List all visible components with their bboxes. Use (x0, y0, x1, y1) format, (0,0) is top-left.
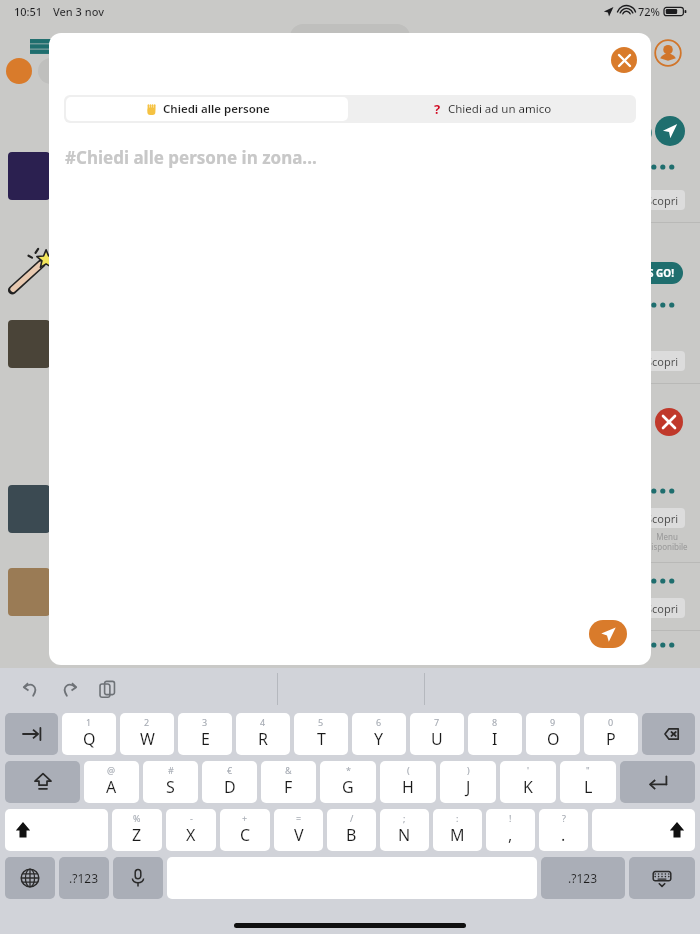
staticText: Scopri (646, 193, 679, 208)
button[interactable]: " (560, 761, 616, 803)
staticText: Z (132, 824, 142, 846)
staticText: * (346, 764, 351, 776)
button[interactable]: = (274, 809, 323, 851)
button[interactable]: ) (440, 761, 496, 803)
staticText: € (227, 764, 233, 776)
button[interactable]: & (261, 761, 316, 803)
staticText: 1 (86, 716, 92, 728)
button[interactable]: 9 (526, 713, 580, 755)
button[interactable]: Maiuscolo (5, 809, 108, 851)
staticText: ? (434, 100, 441, 118)
button[interactable]: Incolla (94, 676, 120, 702)
button[interactable]: Maiuscolo (592, 809, 695, 851)
button[interactable]: 1 (62, 713, 116, 755)
button[interactable]: Chiedi alle persone (66, 97, 348, 121)
staticText: T (317, 728, 326, 750)
button[interactable]: 0 (584, 713, 638, 755)
staticText: 72% (638, 4, 660, 19)
button[interactable]: * (320, 761, 376, 803)
staticText: H (402, 776, 414, 798)
staticText: # (168, 764, 174, 776)
staticText: A (106, 776, 117, 798)
button[interactable]: 5 (294, 713, 348, 755)
staticText: U (431, 728, 443, 750)
button[interactable]: @ (84, 761, 139, 803)
button[interactable]: .?123 (541, 857, 625, 899)
button[interactable]: Lingua (5, 857, 55, 899)
button[interactable]: ? (350, 95, 636, 123)
button[interactable]: # (143, 761, 198, 803)
button[interactable]: 4 (236, 713, 290, 755)
button[interactable]: ? (539, 809, 588, 851)
staticText: : (456, 812, 459, 824)
staticText: E (201, 728, 210, 750)
button[interactable]: 3 (178, 713, 232, 755)
staticText: ? (562, 812, 566, 824)
staticText: V (294, 824, 304, 846)
button[interactable]: Scopri (646, 351, 679, 371)
button[interactable]: - (166, 809, 216, 851)
button[interactable]: Dettatura (113, 857, 163, 899)
staticText: 0 (608, 716, 614, 728)
button[interactable]: Invio (620, 761, 695, 803)
button[interactable]: : (433, 809, 482, 851)
button[interactable]: 8 (468, 713, 522, 755)
other: Menu (28, 34, 54, 60)
button[interactable]: + (220, 809, 270, 851)
button[interactable]: ' (500, 761, 556, 803)
staticText: Q (83, 728, 96, 750)
staticText: 8 (492, 716, 498, 728)
button[interactable]: ; (380, 809, 429, 851)
button[interactable]: % (112, 809, 162, 851)
button[interactable]: Scopri (646, 508, 679, 528)
staticText: R (258, 728, 268, 750)
button[interactable]: Ripeti (56, 676, 82, 702)
button[interactable]: Cancella (642, 713, 695, 755)
staticText: J (466, 776, 471, 798)
staticText: 5 (318, 716, 324, 728)
button[interactable]: Tab (5, 713, 58, 755)
staticText: & (285, 764, 292, 776)
staticText: % (133, 812, 141, 824)
button[interactable]: Invia (589, 620, 627, 648)
staticText: @ (107, 764, 116, 776)
button[interactable]: Scopri (646, 598, 679, 618)
staticText: F (284, 776, 293, 798)
button[interactable]: Annulla (18, 676, 44, 702)
staticText: ( (407, 764, 410, 776)
staticText: S (166, 776, 175, 798)
staticText: ! (509, 812, 512, 824)
staticText: - (190, 812, 193, 824)
staticText: I (492, 728, 498, 750)
button[interactable]: ( (380, 761, 436, 803)
staticText: N (398, 824, 411, 846)
staticText: / (350, 812, 354, 824)
button[interactable]: S GO! (648, 262, 675, 284)
staticText: W (140, 728, 155, 750)
staticText: Ven 3 nov (53, 4, 104, 19)
staticText: K (523, 776, 533, 798)
button[interactable]: Scopri (646, 190, 679, 210)
staticText: ; (403, 812, 406, 824)
button[interactable]: .?123 (59, 857, 109, 899)
button[interactable]: Blocco maiuscole (5, 761, 80, 803)
staticText: B (346, 824, 357, 846)
button[interactable]: Nascondi tastiera (629, 857, 695, 899)
button[interactable]: / (327, 809, 376, 851)
button[interactable]: € (202, 761, 257, 803)
staticText: " (586, 764, 590, 776)
staticText: Menu disponibile (646, 531, 688, 552)
staticText: Scopri (646, 354, 679, 369)
staticText: 9 (550, 716, 556, 728)
button[interactable]: ! (486, 809, 535, 851)
staticText: . (561, 824, 566, 846)
staticText: ) (467, 764, 470, 776)
staticText: .?123 (568, 870, 598, 886)
staticText: G (342, 776, 354, 798)
button[interactable]: 2 (120, 713, 174, 755)
button[interactable]: 7 (410, 713, 464, 755)
button[interactable]: Chiudi (611, 47, 637, 73)
button[interactable]: 6 (352, 713, 406, 755)
staticText: M (450, 824, 465, 846)
